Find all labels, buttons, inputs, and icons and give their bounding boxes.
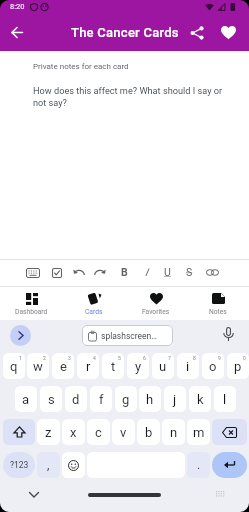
staticText: l — [223, 392, 227, 407]
staticText: p — [234, 359, 242, 374]
staticText: e — [60, 359, 67, 374]
staticText: r — [86, 359, 91, 374]
staticText: c — [95, 425, 102, 440]
staticText: z — [45, 425, 52, 440]
staticText: i — [186, 359, 190, 374]
staticText: U — [164, 266, 171, 278]
staticText: j — [173, 392, 177, 407]
staticText: 9 — [218, 355, 221, 361]
staticText: a — [22, 392, 30, 407]
staticText: How does this affect me? What should I s… — [33, 85, 223, 108]
staticText: 7 — [168, 355, 171, 361]
staticText: . — [197, 458, 201, 472]
staticText: d — [72, 392, 80, 407]
staticText: Cards — [85, 308, 103, 316]
staticText: u — [159, 359, 167, 374]
staticText: Favorites — [142, 308, 170, 316]
staticText: Dashboard — [15, 308, 48, 316]
staticText: 8:20 — [10, 2, 25, 11]
staticText: Private notes for each card — [33, 62, 129, 71]
staticText: 2 — [43, 355, 46, 361]
staticText: I — [145, 266, 148, 278]
staticText: o — [209, 359, 217, 374]
staticText: x — [70, 425, 77, 440]
staticText: n — [170, 425, 178, 440]
staticText: f — [99, 392, 104, 407]
staticText: 3 — [68, 355, 71, 361]
staticText: m — [193, 425, 205, 440]
staticText: B — [121, 266, 128, 278]
staticText: splashscreen… — [101, 331, 157, 341]
staticText: g — [122, 392, 130, 407]
staticText: k — [197, 392, 204, 407]
staticText: , — [47, 458, 50, 472]
staticText: 5 — [118, 355, 121, 361]
staticText: s — [48, 392, 55, 407]
staticText: 6 — [143, 355, 146, 361]
staticText: q — [10, 359, 18, 374]
staticText: S — [186, 266, 193, 278]
staticText: 1 — [19, 355, 22, 361]
staticText: 4 — [93, 355, 96, 361]
staticText: Notes — [209, 308, 227, 316]
staticText: The Cancer Cards — [71, 25, 179, 40]
staticText: 0 — [243, 355, 246, 361]
staticText: y — [135, 359, 142, 374]
staticText: v — [120, 425, 127, 440]
staticText: w — [33, 359, 43, 374]
staticText: ?123 — [10, 460, 29, 470]
staticText: t — [111, 359, 116, 374]
staticText: 8 — [193, 355, 196, 361]
staticText: b — [145, 425, 153, 440]
staticText: h — [146, 392, 154, 407]
